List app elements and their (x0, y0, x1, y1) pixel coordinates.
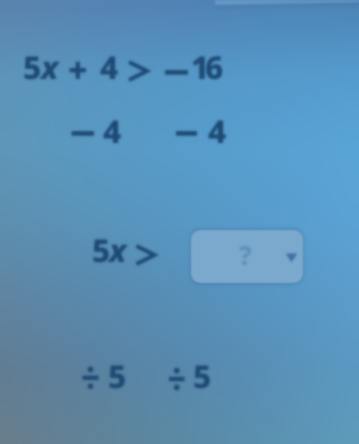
button[interactable]: Choose answer (191, 230, 303, 282)
